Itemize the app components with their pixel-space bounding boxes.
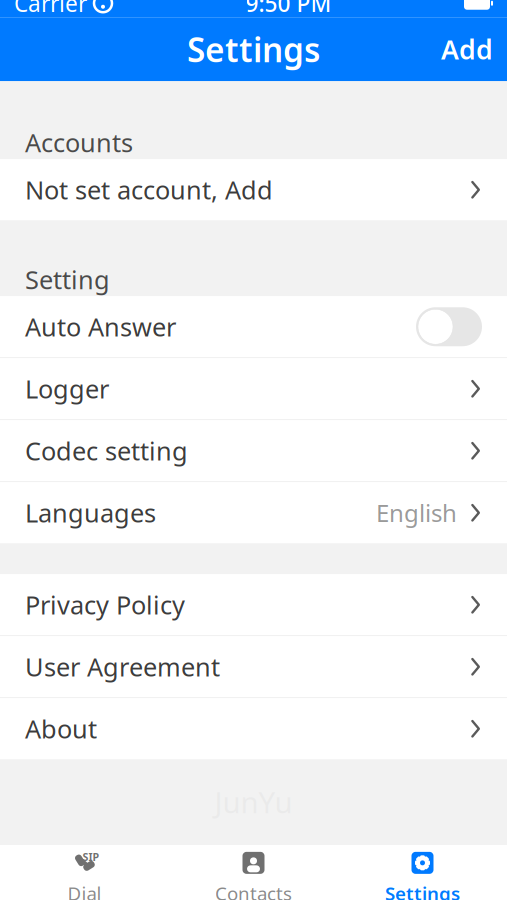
staticText: English <box>376 497 457 529</box>
button[interactable]: SIP <box>0 845 169 900</box>
staticText: Setting <box>25 263 110 296</box>
staticText: 9:50 PM <box>245 0 331 18</box>
button[interactable]: Settings <box>338 845 507 900</box>
button[interactable]: About <box>0 698 507 759</box>
staticText: User Agreement <box>25 650 220 683</box>
staticText: Settings <box>187 27 320 71</box>
staticText: Add <box>441 31 493 67</box>
staticText: About <box>25 712 97 745</box>
staticText: Carrier <box>14 0 87 18</box>
button[interactable]: Logger <box>0 358 507 419</box>
button[interactable]: Privacy Policy <box>0 574 507 635</box>
button[interactable]: Auto Answer toggle <box>416 307 482 346</box>
button[interactable]: User Agreement <box>0 636 507 697</box>
button[interactable]: Contacts <box>169 845 338 900</box>
staticText: Codec setting <box>25 434 188 467</box>
staticText: Settings <box>385 881 460 900</box>
staticText: Accounts <box>25 126 133 159</box>
button[interactable]: Codec setting <box>0 420 507 481</box>
staticText: Auto Answer <box>25 310 176 343</box>
staticText: Languages <box>25 496 156 529</box>
button[interactable]: Add <box>427 21 507 77</box>
staticText: Contacts <box>215 881 292 900</box>
staticText: Logger <box>25 372 109 405</box>
staticText: Not set account, Add <box>25 173 273 206</box>
staticText: SIP <box>82 850 99 864</box>
button[interactable]: Languages <box>0 482 507 543</box>
staticText: Dial <box>67 881 101 900</box>
button[interactable]: Not set account, Add <box>0 159 507 220</box>
staticText: Privacy Policy <box>25 588 185 621</box>
